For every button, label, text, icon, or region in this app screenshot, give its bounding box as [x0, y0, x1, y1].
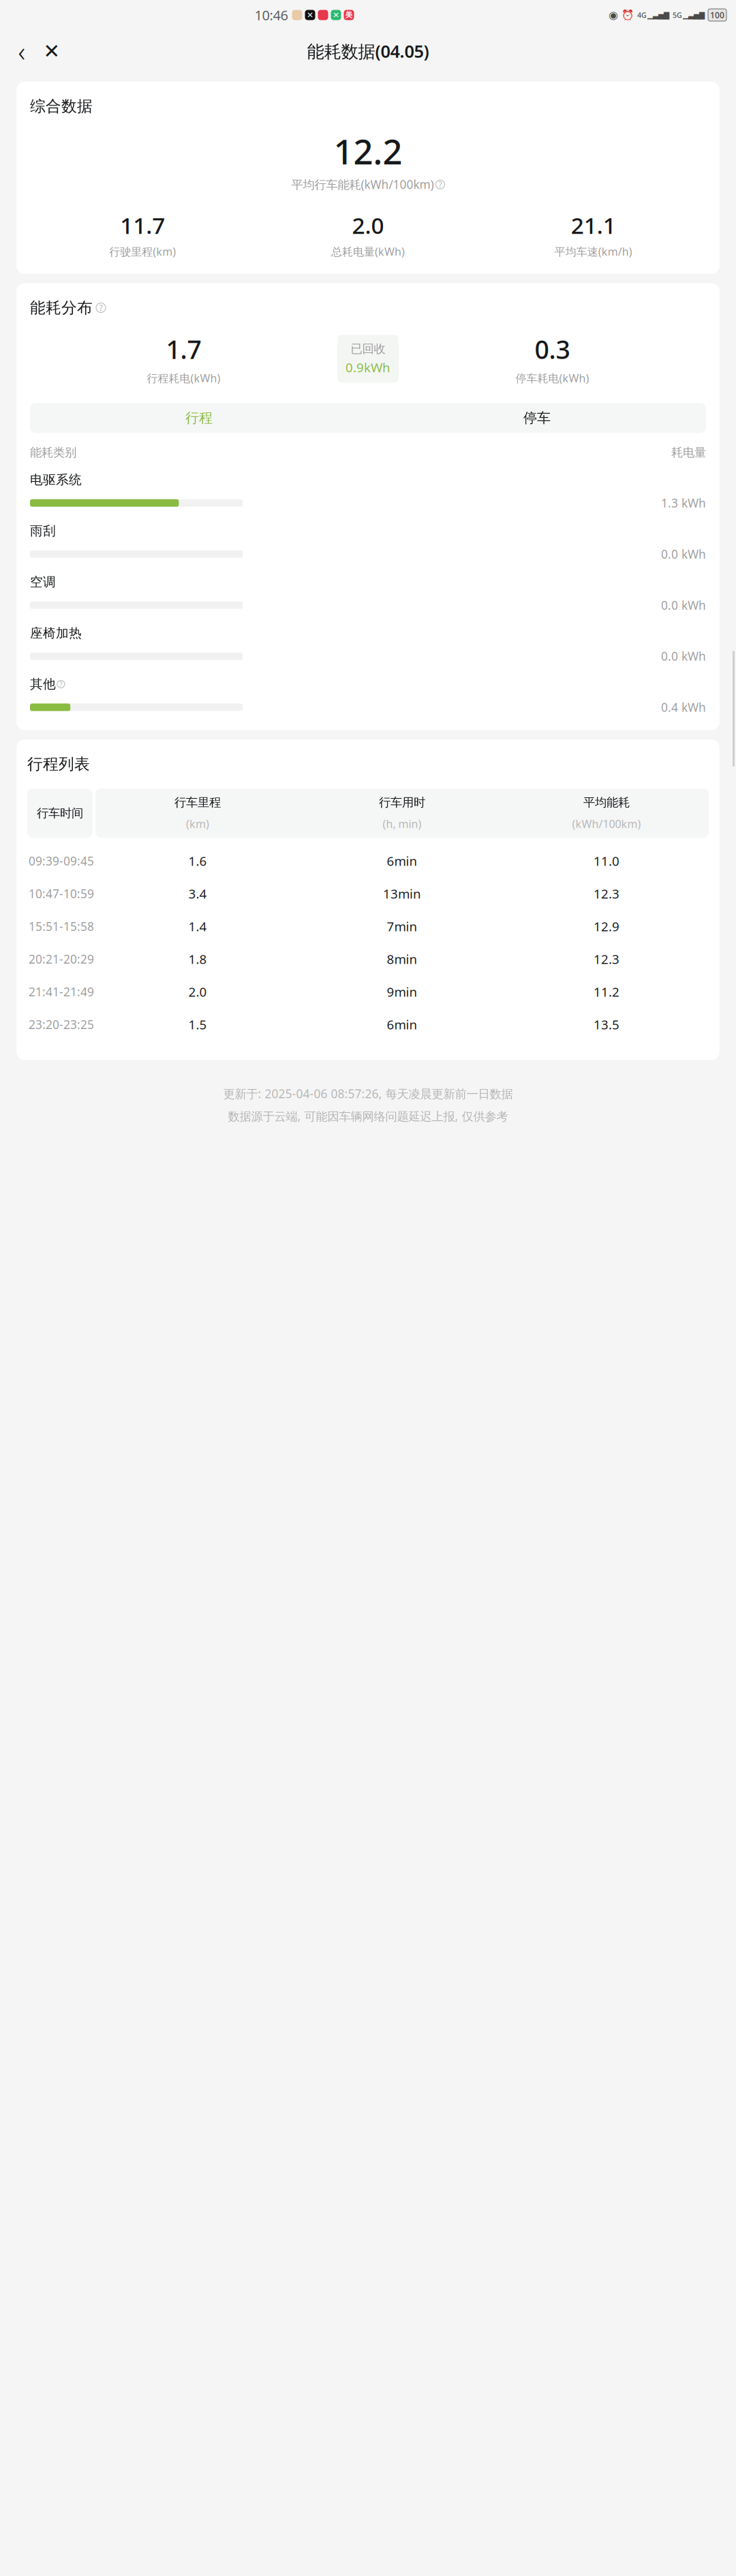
staticText: ▁▃▅▇	[647, 11, 669, 19]
staticText: 耗电量	[671, 445, 706, 460]
staticText: 09:39-09:45	[29, 853, 94, 869]
staticText: 1.5	[188, 1016, 207, 1033]
staticText: 0.0 kWh	[661, 597, 706, 613]
staticText: 更新于: 2025-04-06 08:57:26, 每天凌晨更新前一日数据	[223, 1086, 513, 1101]
staticText: 6min	[387, 852, 417, 869]
staticText: 行程	[185, 410, 213, 426]
staticText: 能耗分布	[30, 298, 93, 317]
staticText: 行车用时	[379, 795, 425, 810]
staticText: 13min	[383, 885, 421, 902]
staticText: 行程耗电(kWh)	[147, 371, 220, 385]
staticText: 11.0	[594, 852, 619, 869]
staticText: 21.1	[571, 210, 616, 240]
staticText: 电驱系统	[30, 472, 82, 488]
staticText: 雨刮	[30, 523, 56, 539]
staticText: (kWh/100km)	[572, 817, 641, 831]
staticText: 1.4	[188, 918, 207, 935]
staticText: ?	[59, 679, 63, 689]
staticText: 行程列表	[27, 755, 90, 774]
staticText: 1.3 kWh	[661, 495, 706, 511]
staticText: 12.3	[594, 885, 619, 902]
staticText: 0.3	[535, 332, 570, 366]
staticText: 15:51-15:58	[29, 918, 94, 934]
staticText: 已回收	[351, 342, 385, 356]
staticText: 2.0	[352, 210, 384, 240]
staticText: 12.9	[594, 918, 619, 935]
staticText: 0.4 kWh	[661, 699, 706, 715]
staticText: ▁▃▅▇	[683, 11, 705, 19]
staticText: 其他	[30, 676, 56, 692]
staticText: 23:20-23:25	[29, 1017, 94, 1032]
staticText: 平均车速(km/h)	[555, 244, 632, 259]
staticText: 9min	[387, 983, 417, 1000]
staticText: 7min	[387, 918, 417, 935]
staticText: 行车里程	[174, 795, 221, 810]
staticText: 21:41-21:49	[29, 984, 94, 1000]
staticText: 空调	[30, 574, 56, 590]
staticText: ✕	[333, 10, 339, 20]
staticText: 6min	[387, 1016, 417, 1033]
staticText: (h, min)	[383, 817, 421, 831]
staticText: 总耗电量(kWh)	[331, 244, 405, 259]
staticText: 行驶里程(km)	[109, 244, 176, 259]
staticText: ◉	[609, 9, 618, 21]
staticText: 停车耗电(kWh)	[516, 371, 589, 385]
staticText: ⏰	[622, 9, 634, 21]
staticText: ?	[99, 302, 103, 313]
staticText: 1.6	[188, 852, 207, 869]
staticText: 0.0 kWh	[661, 546, 706, 562]
staticText: ‹	[18, 33, 26, 69]
staticText: ✕	[307, 10, 313, 20]
staticText: 行车时间	[37, 806, 83, 820]
staticText: 座椅加热	[30, 625, 82, 641]
button[interactable]: 停车	[368, 403, 706, 433]
staticText: 平均行车能耗(kWh/100km)	[291, 177, 434, 192]
staticText: 能耗数据(04.05)	[307, 40, 429, 63]
staticText: 11.7	[120, 210, 165, 240]
staticText: 100	[710, 10, 724, 20]
button[interactable]: 行程	[30, 403, 368, 433]
staticText: 12.3	[594, 951, 619, 967]
staticText: ✕	[43, 40, 60, 62]
staticText: 综合数据	[30, 97, 93, 116]
staticText: 3.4	[188, 885, 207, 902]
staticText: 0.9kWh	[346, 359, 390, 376]
staticText: 11.2	[594, 983, 619, 1000]
staticText: 10:46	[255, 6, 288, 24]
staticText: 10:47-10:59	[29, 886, 94, 901]
staticText: 2.0	[188, 983, 207, 1000]
staticText: 5G	[673, 10, 682, 20]
button[interactable]: Back	[7, 35, 37, 67]
staticText: 数据源于云端, 可能因车辆网络问题延迟上报, 仅供参考	[228, 1108, 508, 1124]
staticText: (km)	[186, 817, 209, 831]
staticText: 美	[345, 10, 353, 19]
staticText: 13.5	[594, 1016, 619, 1033]
button[interactable]: Close	[37, 35, 67, 67]
staticText: 4G	[637, 10, 647, 20]
staticText: 20:21-20:29	[29, 951, 94, 967]
staticText: 1.7	[166, 332, 201, 366]
staticText: 8min	[387, 951, 417, 967]
staticText: ?	[439, 179, 442, 190]
staticText: 1.8	[188, 951, 207, 967]
staticText: 0.0 kWh	[661, 648, 706, 664]
staticText: 停车	[523, 410, 551, 426]
staticText: 12.2	[334, 128, 402, 174]
staticText: 能耗类别	[30, 445, 76, 460]
staticText: 平均能耗	[583, 795, 630, 810]
